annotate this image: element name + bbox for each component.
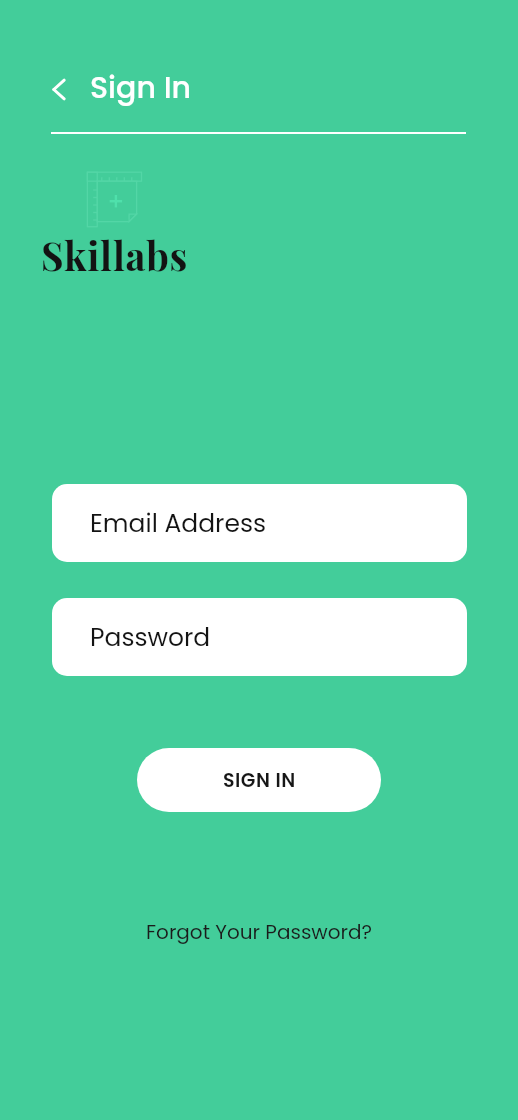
- staticText: Skillabs: [41, 229, 188, 280]
- button[interactable]: Forgot Your Password?: [134, 908, 384, 956]
- staticText: Password: [90, 620, 211, 655]
- button[interactable]: Password: [52, 598, 467, 676]
- button[interactable]: Back: [36, 66, 82, 112]
- staticText: Email Address: [90, 506, 267, 541]
- staticText: SIGN IN: [223, 767, 296, 794]
- staticText: Sign In: [90, 67, 192, 109]
- button[interactable]: SIGN IN: [137, 748, 381, 812]
- staticText: Forgot Your Password?: [146, 918, 372, 946]
- button[interactable]: Email Address: [52, 484, 467, 562]
